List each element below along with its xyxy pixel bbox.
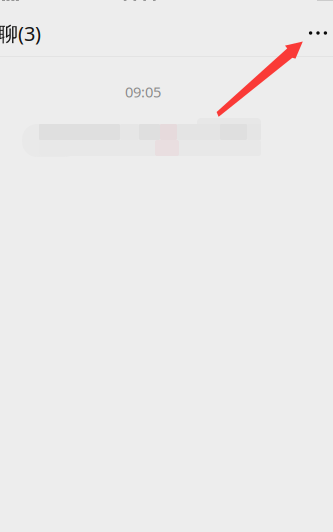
- staticText: 09:05: [125, 82, 161, 101]
- button[interactable]: More: [296, 11, 333, 55]
- staticText: 聊(3): [0, 20, 41, 47]
